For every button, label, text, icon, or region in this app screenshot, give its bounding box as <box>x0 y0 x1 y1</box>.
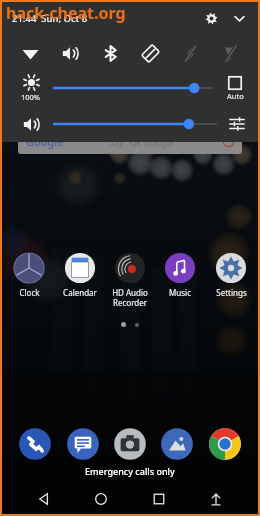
staticText: Calendar <box>63 287 97 298</box>
button[interactable]: Expand <box>228 7 250 29</box>
button[interactable]: rotate <box>134 37 166 69</box>
button[interactable]: camera <box>112 426 148 462</box>
button[interactable]: level <box>14 74 48 102</box>
button[interactable]: Settings <box>200 7 222 29</box>
staticText: Music <box>169 287 191 298</box>
staticText: Say "Ok Google" <box>109 136 178 148</box>
button[interactable]: Sound settings <box>224 111 250 137</box>
button[interactable]: photos <box>159 426 195 462</box>
staticText: hack-cheat.org <box>6 2 126 24</box>
button[interactable]: Auto brightness <box>220 76 250 101</box>
staticText: Google <box>26 134 64 149</box>
button[interactable]: phone <box>17 426 53 462</box>
button[interactable]: Music <box>155 252 205 298</box>
button[interactable]: chrome <box>207 426 243 462</box>
button[interactable]: flash <box>174 37 206 69</box>
staticText: 21:44 Sun, Oct 8 <box>12 12 88 25</box>
button[interactable]: sound <box>54 37 86 69</box>
button[interactable]: HD Audio Recorder <box>105 252 155 308</box>
button[interactable]: share <box>202 485 230 513</box>
button[interactable]: Settings <box>206 252 256 298</box>
button[interactable]: msg <box>65 426 101 462</box>
button[interactable]: home <box>87 485 115 513</box>
button[interactable]: cast <box>214 37 246 69</box>
staticText: Settings <box>216 287 247 298</box>
staticText: Emergency calls only <box>85 465 175 477</box>
button[interactable]: slider <box>54 112 216 136</box>
button[interactable]: back <box>30 485 58 513</box>
button[interactable]: Clock <box>4 252 54 298</box>
staticText: Auto <box>227 91 244 101</box>
staticText: HD Audio Recorder <box>112 287 148 308</box>
button[interactable]: Calendar <box>55 252 105 298</box>
button[interactable]: Google <box>18 128 242 154</box>
button[interactable]: bt <box>94 37 126 69</box>
staticText: 100% <box>21 92 41 102</box>
staticText: Clock <box>19 287 40 298</box>
button[interactable]: wifi <box>14 37 46 69</box>
button[interactable]: level <box>14 116 48 133</box>
button[interactable]: slider <box>54 76 212 100</box>
button[interactable]: recents <box>145 485 173 513</box>
